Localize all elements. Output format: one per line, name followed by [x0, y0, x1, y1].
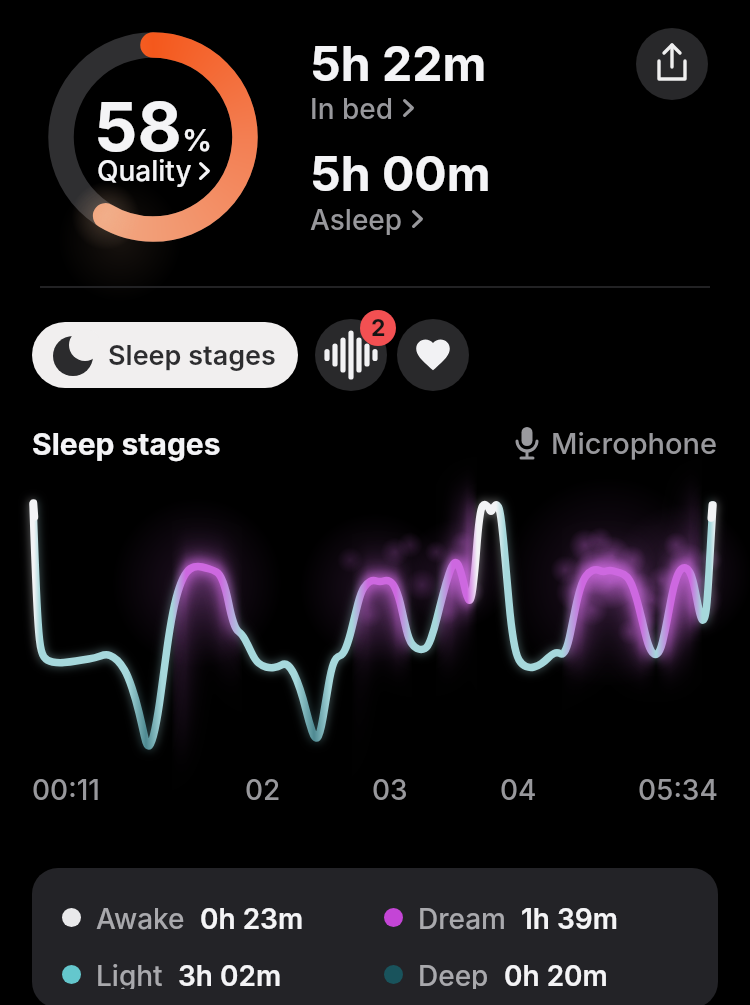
- staticText: Dream: [418, 902, 506, 932]
- staticText: 0h 20m: [504, 959, 608, 989]
- staticText: Light: [96, 959, 163, 989]
- staticText: Sleep stages: [108, 339, 276, 372]
- staticText: 00:11: [32, 773, 100, 807]
- staticText: Quality: [97, 154, 192, 188]
- staticText: 05:34: [638, 773, 718, 807]
- staticText: 04: [500, 773, 537, 807]
- staticText: 0h 23m: [200, 902, 304, 932]
- staticText: 03: [372, 773, 408, 807]
- staticText: Microphone: [551, 426, 718, 461]
- staticText: In bed: [310, 92, 394, 124]
- staticText: Asleep: [310, 203, 403, 235]
- staticText: 02: [245, 773, 281, 807]
- staticText: 58: [94, 85, 182, 167]
- staticText: 5h 22m: [310, 34, 487, 92]
- staticText: Awake: [96, 902, 185, 932]
- staticText: 3h 02m: [178, 959, 282, 989]
- staticText: 2: [371, 314, 386, 342]
- staticText: 5h 00m: [310, 144, 491, 202]
- staticText: %: [182, 122, 213, 158]
- staticText: Sleep stages: [32, 426, 221, 462]
- staticText: Deep: [418, 959, 489, 989]
- staticText: 1h 39m: [521, 902, 618, 932]
